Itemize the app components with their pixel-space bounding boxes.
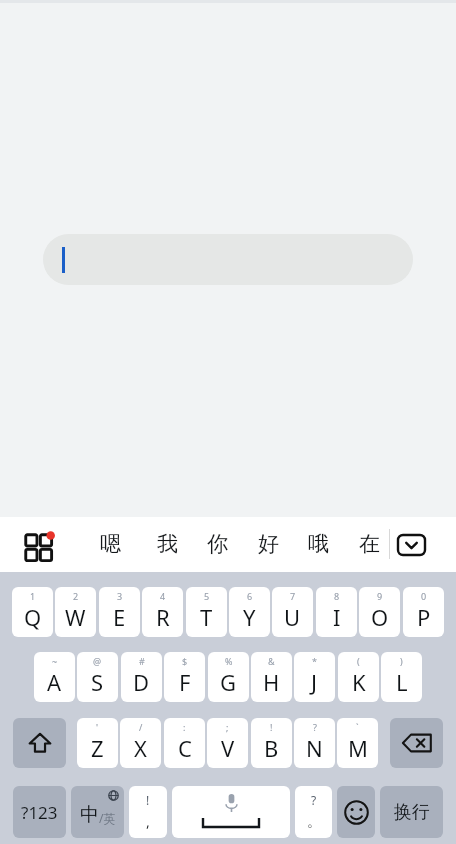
staticText: 9 bbox=[377, 590, 383, 602]
staticText: / bbox=[139, 721, 143, 733]
staticText: ; bbox=[226, 721, 229, 733]
button[interactable]: 7 bbox=[272, 587, 313, 637]
staticText: * bbox=[312, 655, 317, 667]
button[interactable]: & bbox=[251, 652, 292, 702]
button[interactable]: / bbox=[120, 718, 161, 768]
button[interactable]: 哦 bbox=[298, 524, 338, 564]
button[interactable]: ! bbox=[129, 786, 167, 838]
button[interactable]: Backspace bbox=[390, 718, 443, 768]
staticText: 你 bbox=[207, 531, 228, 557]
button[interactable] bbox=[43, 234, 413, 285]
button[interactable]: # bbox=[121, 652, 162, 702]
staticText: & bbox=[268, 655, 275, 667]
button[interactable]: ?123 bbox=[13, 786, 66, 838]
staticText: 在 bbox=[359, 531, 380, 557]
button[interactable]: 9 bbox=[359, 587, 400, 637]
button[interactable]: 4 bbox=[142, 587, 183, 637]
staticText: ` bbox=[356, 721, 359, 733]
staticText: 0 bbox=[421, 590, 427, 602]
staticText: 哦 bbox=[308, 531, 329, 557]
button[interactable]: 中 bbox=[71, 786, 124, 838]
staticText: J bbox=[311, 667, 318, 697]
button[interactable]: Emoji bbox=[337, 786, 375, 838]
staticText: ?123 bbox=[21, 801, 58, 824]
button[interactable]: Shift bbox=[13, 718, 66, 768]
button[interactable]: : bbox=[164, 718, 205, 768]
staticText: S bbox=[91, 667, 104, 697]
staticText: V bbox=[221, 733, 235, 763]
button[interactable]: 在 bbox=[349, 524, 389, 564]
staticText: # bbox=[139, 655, 145, 667]
staticText: 好 bbox=[258, 531, 279, 557]
button[interactable]: 0 bbox=[403, 587, 444, 637]
staticText: ! bbox=[270, 721, 273, 733]
button[interactable]: 3 bbox=[99, 587, 140, 637]
staticText: 我 bbox=[157, 531, 178, 557]
button[interactable]: 换行 bbox=[380, 786, 443, 838]
button[interactable]: 你 bbox=[197, 524, 237, 564]
staticText: 5 bbox=[204, 590, 210, 602]
button[interactable]: ? bbox=[295, 786, 332, 838]
staticText: % bbox=[225, 655, 233, 667]
button[interactable]: ; bbox=[207, 718, 248, 768]
staticText: D bbox=[133, 667, 150, 697]
staticText: 6 bbox=[247, 590, 253, 602]
staticText: ) bbox=[400, 655, 403, 667]
staticText: C bbox=[178, 733, 192, 763]
button[interactable]: Space bbox=[172, 786, 290, 838]
staticText: 7 bbox=[290, 590, 296, 602]
staticText: L bbox=[396, 667, 408, 697]
staticText: O bbox=[371, 602, 389, 632]
button[interactable]: 1 bbox=[12, 587, 53, 637]
staticText: : bbox=[183, 721, 186, 733]
staticText: ~ bbox=[52, 655, 58, 667]
staticText: Y bbox=[243, 602, 256, 632]
button[interactable]: @ bbox=[77, 652, 118, 702]
staticText: F bbox=[179, 667, 191, 697]
button[interactable]: 5 bbox=[186, 587, 227, 637]
button[interactable]: 6 bbox=[229, 587, 270, 637]
staticText: @ bbox=[93, 655, 102, 667]
button[interactable]: ~ bbox=[34, 652, 75, 702]
button[interactable]: ? bbox=[294, 718, 335, 768]
staticText: W bbox=[65, 602, 86, 632]
staticText: P bbox=[417, 602, 431, 632]
button[interactable]: * bbox=[294, 652, 335, 702]
staticText: K bbox=[352, 667, 366, 697]
staticText: X bbox=[134, 733, 147, 763]
button[interactable]: 我 bbox=[147, 524, 187, 564]
button[interactable]: 好 bbox=[248, 524, 288, 564]
staticText: 3 bbox=[117, 590, 123, 602]
staticText: Q bbox=[24, 602, 42, 632]
button[interactable]: ` bbox=[337, 718, 378, 768]
staticText: , bbox=[146, 812, 150, 831]
button[interactable]: $ bbox=[164, 652, 205, 702]
staticText: M bbox=[348, 733, 368, 763]
button[interactable]: 嗯 bbox=[90, 524, 130, 564]
staticText: ( bbox=[357, 655, 360, 667]
button[interactable]: 2 bbox=[55, 587, 96, 637]
staticText: N bbox=[306, 733, 323, 763]
staticText: E bbox=[113, 602, 126, 632]
staticText: 1 bbox=[30, 590, 36, 602]
staticText: T bbox=[200, 602, 213, 632]
staticText: Z bbox=[91, 733, 104, 763]
staticText: H bbox=[263, 667, 280, 697]
button[interactable]: ) bbox=[381, 652, 422, 702]
button[interactable]: ' bbox=[77, 718, 118, 768]
staticText: U bbox=[284, 602, 301, 632]
button[interactable]: Hide keyboard bbox=[396, 533, 427, 557]
staticText: 8 bbox=[334, 590, 340, 602]
staticText: A bbox=[47, 667, 62, 697]
staticText: ! bbox=[146, 792, 150, 808]
button[interactable]: ! bbox=[251, 718, 292, 768]
staticText: /英 bbox=[99, 810, 116, 826]
button[interactable]: 8 bbox=[316, 587, 357, 637]
button[interactable]: Keyboard menu bbox=[21, 528, 55, 562]
staticText: B bbox=[264, 733, 279, 763]
button[interactable]: % bbox=[208, 652, 249, 702]
staticText: ' bbox=[96, 721, 99, 733]
button[interactable]: ( bbox=[338, 652, 379, 702]
staticText: R bbox=[156, 602, 170, 632]
staticText: 4 bbox=[160, 590, 166, 602]
